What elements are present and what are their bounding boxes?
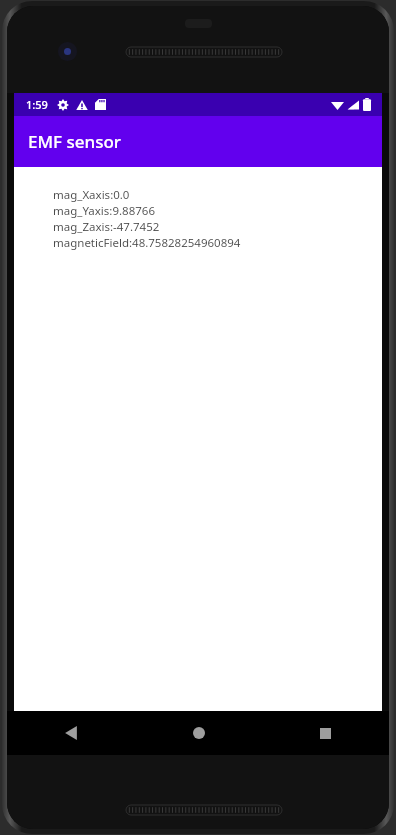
- staticText: mag_Xaxis:0.0: [53, 187, 130, 203]
- staticText: magneticField:48.75828254960894: [53, 235, 241, 251]
- button[interactable]: Recent apps: [262, 711, 389, 755]
- staticText: 1:59: [26, 97, 48, 112]
- button[interactable]: Back: [7, 711, 135, 755]
- staticText: mag_Zaxis:-47.7452: [53, 219, 160, 235]
- button[interactable]: Home: [135, 711, 262, 755]
- staticText: EMF sensor: [28, 130, 121, 153]
- staticText: mag_Yaxis:9.88766: [53, 203, 155, 219]
- button[interactable]: EMF sensor: [14, 116, 382, 167]
